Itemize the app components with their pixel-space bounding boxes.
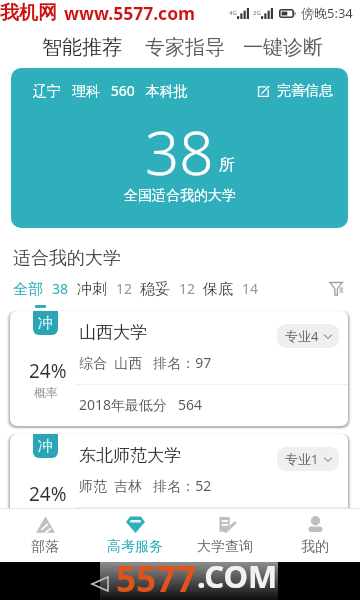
staticText: 辽宁 理科 560 本科批 [33,81,188,100]
staticText: 山西大学 [79,322,147,343]
staticText: 2018年最低分 508 [79,518,202,537]
button[interactable]: 筛选 [328,280,346,298]
button[interactable]: 专业1 [277,447,339,471]
button[interactable]: 高考服务 [90,509,180,562]
button[interactable]: 部落 [0,509,90,562]
staticText: 师范 吉林 排名：52 [79,476,212,495]
staticText: 东北师范大学 [79,445,181,466]
button[interactable]: 智能推荐 [42,35,122,60]
staticText: 概率 [34,385,58,400]
staticText: 适合我的大学 [13,247,121,270]
staticText: 所 [219,155,235,175]
staticText: 稳妥 [140,280,170,299]
staticText: 冲 [38,437,53,456]
staticText: 保底 [203,280,233,299]
staticText: 全国适合我的大学 [124,187,236,205]
staticText: 部落 [31,538,59,556]
button[interactable]: 冲刺 [77,279,133,299]
staticText: 38 [52,279,69,298]
button[interactable]: 山西大学 [10,311,348,426]
button[interactable]: 一键诊断 [243,35,323,60]
staticText: 专业4 [285,327,319,345]
staticText: .COM [197,555,278,593]
staticText: 我的 [301,538,329,556]
button[interactable]: 保底 [203,279,259,299]
button[interactable]: 辽宁 理科 560 本科批 [11,68,348,228]
staticText: 12 [116,279,133,298]
staticText: 24% [29,358,67,384]
staticText: 专家指导 [145,35,225,60]
staticText: 冲刺 [77,280,107,299]
staticText: 概率 [34,508,58,523]
button[interactable]: 我的 [270,509,360,562]
staticText: 综合 山西 排名：97 [79,353,212,372]
button[interactable]: 稳妥 [140,279,196,299]
staticText: 大学查询 [197,538,253,556]
staticText: 高考服务 [107,538,163,556]
button[interactable]: 完善信息 [257,82,333,100]
button[interactable]: 专家指导 [145,35,225,60]
button[interactable]: 大学查询 [180,509,270,562]
staticText: 5577 [116,555,197,593]
staticText: 完善信息 [277,82,333,100]
staticText: 14 [242,279,259,298]
button[interactable]: 东北师范大学 [10,434,348,549]
staticText: 2G [253,9,261,17]
staticText: 全部 [13,280,43,299]
staticText: 专业1 [285,450,319,468]
staticText: 冲 [38,314,53,333]
staticText: 38 [145,111,214,193]
staticText: 傍晚5:34 [301,4,353,22]
staticText: 24% [29,481,67,507]
staticText: 4G [229,9,237,17]
staticText: 2018年最低分 564 [79,395,202,414]
staticText: 我机网 [0,1,57,25]
button[interactable]: 专业4 [277,324,339,348]
staticText: 智能推荐 [42,35,122,60]
staticText: 12 [179,279,196,298]
staticText: www.5577.com [64,1,196,25]
button[interactable]: 全部 [13,279,69,299]
staticText: 一键诊断 [243,35,323,60]
